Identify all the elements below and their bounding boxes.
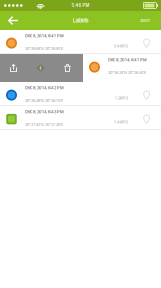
staticText: 5:46 PM [71,3,89,8]
staticText: 30°27.82'N 30°27.38'E [25,122,63,127]
staticText: Dec 8, 2014, 6:42 PM [25,85,64,90]
staticText: Dec 8, 2014, 6:43 PM [25,109,64,114]
button[interactable]: Dec 8, 2014, 6:41 PM [0,30,161,54]
staticText: Labels [72,17,88,24]
staticText: Dec 8, 2014, 6:41 PM [25,33,64,38]
button[interactable]: Delete [54,54,81,82]
staticText: 30°26.34'N 30°26.44'E [108,70,146,75]
staticText: Select [140,18,150,23]
button[interactable]: Dec 8, 2014, 6:42 PM [0,82,161,106]
staticText: Dec 8, 2014, 6:41 PM [108,57,147,62]
button[interactable]: Back [0,11,26,30]
staticText: 30°26.68'N 30°26.85'E [25,46,63,51]
button[interactable]: Select [129,11,161,30]
button[interactable]: Dec 8, 2014, 6:41 PM [83,54,161,82]
staticText: 0.4kms [114,43,128,48]
button[interactable]: Navigate to [27,54,54,82]
button[interactable]: Share [0,54,27,82]
staticText: 1.4kms [114,119,128,124]
button[interactable]: Dec 8, 2014, 6:43 PM [0,106,161,130]
staticText: 30°26.48'N 30°26.19'E [25,98,63,103]
staticText: 1.2kms [115,95,128,100]
